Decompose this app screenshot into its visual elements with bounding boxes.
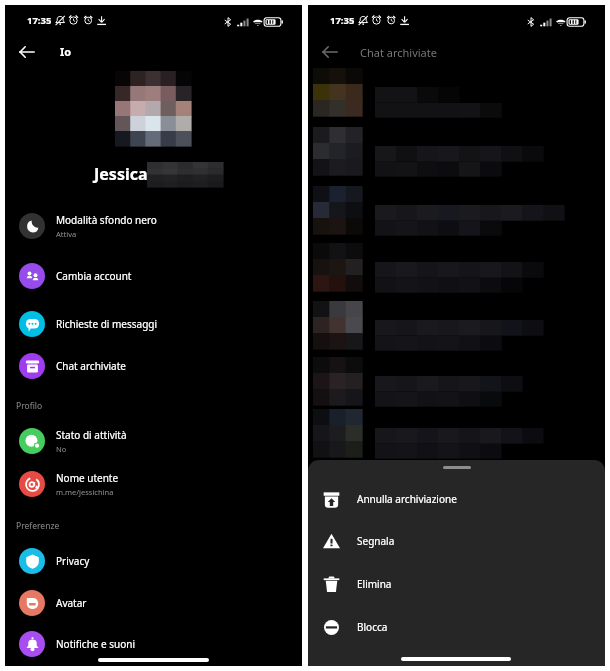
staticText: Jessica	[94, 163, 148, 185]
button[interactable]: Stato di attività	[5, 422, 302, 460]
staticText: Avatar	[56, 596, 87, 610]
button[interactable]: Blocca	[308, 610, 605, 644]
staticText: Stato di attività	[56, 428, 127, 442]
staticText: Cambia account	[56, 269, 132, 283]
staticText: Notifiche e suoni	[56, 637, 136, 651]
staticText: Richieste di messaggi	[56, 317, 158, 331]
staticText: 17:35	[27, 14, 52, 27]
staticText: Segnala	[357, 534, 395, 548]
button[interactable]: Back	[15, 40, 39, 64]
staticText: Modalità sfondo nero	[56, 213, 157, 227]
staticText: No	[56, 444, 67, 454]
staticText: Nome utente	[56, 471, 119, 485]
staticText: Chat archiviate	[360, 45, 437, 60]
button[interactable]: Notifiche e suoni	[5, 625, 302, 663]
button[interactable]: Avatar	[5, 584, 302, 622]
button[interactable]: Annulla archiviazione	[308, 482, 605, 516]
button[interactable]: Nome utente	[5, 465, 302, 503]
button[interactable]: Modalità sfondo nero	[5, 207, 302, 245]
button[interactable]: Segnala	[308, 524, 605, 558]
staticText: Privacy	[56, 554, 90, 568]
staticText: Elimina	[357, 577, 392, 591]
button[interactable]: Cambia account	[5, 257, 302, 295]
staticText: m.me/jessichina	[56, 487, 114, 497]
staticText: Attiva	[56, 229, 77, 239]
button[interactable]: Privacy	[5, 542, 302, 580]
button[interactable]: Elimina	[308, 567, 605, 601]
staticText: Annulla archiviazione	[357, 492, 457, 506]
staticText: Preferenze	[16, 520, 60, 532]
staticText: Blocca	[357, 620, 388, 634]
button[interactable]: Richieste di messaggi	[5, 305, 302, 343]
staticText: Chat archiviate	[56, 359, 126, 373]
staticText: Profilo	[16, 400, 43, 412]
button[interactable]: Chat archiviate	[5, 347, 302, 385]
button[interactable]: Back	[318, 40, 342, 64]
staticText: 17:35	[330, 14, 355, 27]
staticText: Io	[60, 44, 72, 59]
